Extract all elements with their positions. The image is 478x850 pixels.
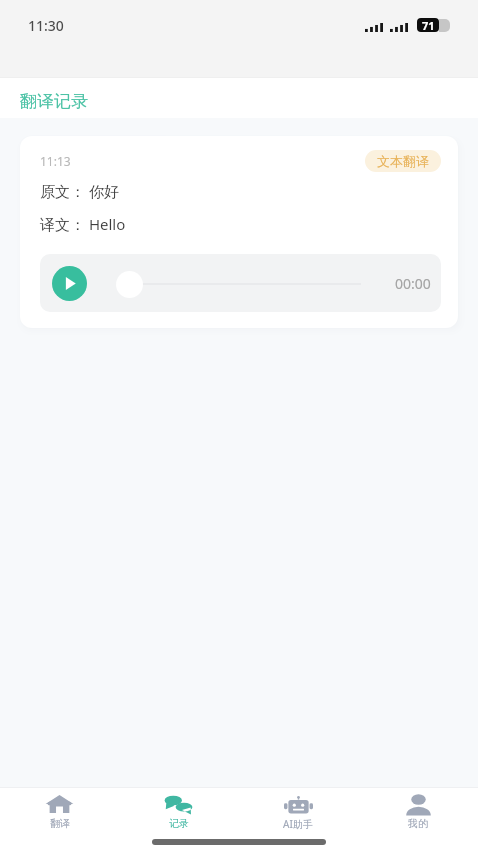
- button[interactable]: 文本翻译: [365, 150, 441, 172]
- button[interactable]: 11:13: [20, 136, 458, 328]
- staticText: 翻译记录: [20, 91, 88, 112]
- staticText: 71: [422, 18, 435, 32]
- button[interactable]: 我的: [358, 788, 478, 833]
- staticText: 记录: [169, 817, 189, 830]
- button[interactable]: Play: [52, 266, 87, 301]
- button[interactable]: 记录: [119, 788, 238, 833]
- staticText: 00:00: [395, 274, 431, 293]
- button[interactable]: [116, 271, 143, 298]
- staticText: 我的: [408, 817, 428, 830]
- staticText: 11:30: [28, 16, 64, 35]
- button[interactable]: AI助手: [238, 788, 358, 833]
- staticText: 11:13: [40, 153, 71, 169]
- staticText: AI助手: [283, 817, 313, 831]
- button[interactable]: 翻译: [0, 788, 119, 833]
- staticText: 文本翻译: [377, 153, 429, 169]
- staticText: 原文： 你好: [40, 181, 119, 201]
- staticText: 翻译: [50, 817, 70, 830]
- staticText: 译文： Hello: [40, 214, 126, 234]
